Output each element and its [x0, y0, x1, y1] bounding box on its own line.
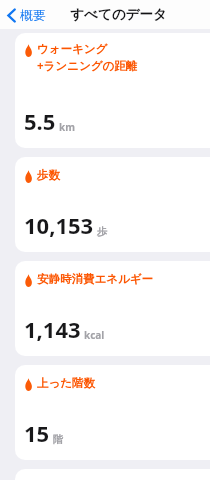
button[interactable]: 安静時消費エネルギー	[15, 261, 210, 356]
staticText: 10,153	[24, 210, 94, 240]
button[interactable]: 上った階数	[15, 365, 210, 460]
staticText: 概要	[20, 7, 46, 23]
button[interactable]: 歩数	[15, 157, 210, 252]
staticText: 5.5	[24, 106, 56, 136]
staticText: 上った階数	[37, 376, 96, 390]
staticText: km	[59, 120, 75, 134]
button[interactable]: ウォーキング +ランニングの距離	[15, 33, 210, 148]
staticText: すべてのデータ	[70, 6, 167, 23]
staticText: kcal	[84, 328, 105, 342]
staticText: ウォーキング +ランニングの距離	[37, 42, 138, 73]
staticText: 歩	[97, 225, 107, 238]
staticText: 歩数	[37, 168, 60, 182]
staticText: 1,143	[24, 314, 81, 344]
staticText: 階	[53, 433, 63, 446]
button[interactable]: 概要	[0, 3, 52, 27]
staticText: 15	[24, 418, 50, 448]
staticText: 安静時消費エネルギー	[37, 272, 154, 286]
